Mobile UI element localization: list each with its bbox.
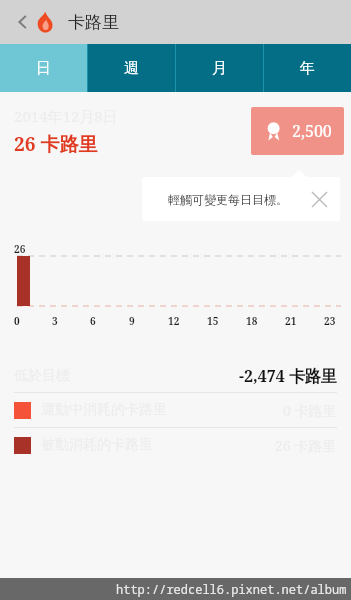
staticText: 月 (212, 59, 227, 78)
staticText: 26 (14, 242, 26, 256)
staticText: 2014年12月8日 (14, 106, 118, 126)
staticText: 6 (90, 314, 96, 328)
button[interactable]: 年 (263, 44, 351, 92)
staticText: 日 (36, 59, 51, 78)
staticText: 低於目標 (14, 367, 70, 385)
staticText: 21 (285, 314, 297, 328)
staticText: 26 卡路里 (275, 436, 337, 455)
staticText: 輕觸可變更每日目標。 (150, 192, 306, 207)
button[interactable]: 日 (0, 44, 87, 92)
staticText: 15 (207, 314, 219, 328)
staticText: 0 卡路里 (283, 401, 337, 420)
staticText: 年 (300, 59, 315, 78)
staticText: 12 (168, 314, 180, 328)
button[interactable]: 2,500 (251, 107, 344, 155)
staticText: 18 (246, 314, 258, 328)
staticText: 26 卡路里 (14, 131, 98, 157)
button[interactable]: Close (306, 186, 332, 212)
button[interactable]: 月 (175, 44, 263, 92)
button[interactable]: 週 (87, 44, 175, 92)
staticText: 週 (124, 59, 139, 78)
staticText: 0 (14, 314, 20, 328)
staticText: -2,474 卡路里 (239, 365, 337, 387)
staticText: 2,500 (292, 120, 332, 142)
staticText: 被動消耗的卡路里 (41, 436, 153, 454)
button[interactable]: 被動消耗的卡路里 (0, 428, 351, 462)
staticText: 3 (52, 314, 58, 328)
staticText: http://redcell6.pixnet.net/album (116, 581, 347, 597)
staticText: 23 (324, 314, 336, 328)
button[interactable]: Back (6, 5, 40, 39)
staticText: 卡路里 (68, 12, 119, 33)
staticText: 9 (129, 314, 135, 328)
button[interactable]: 運動中消耗的卡路里 (0, 393, 351, 427)
staticText: 運動中消耗的卡路里 (41, 401, 167, 419)
